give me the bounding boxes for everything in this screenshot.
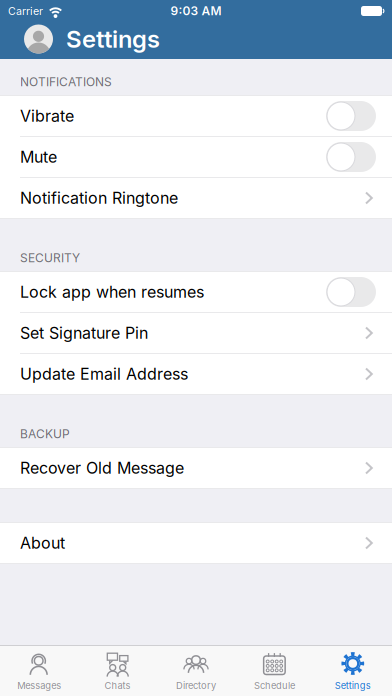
staticText: Vibrate bbox=[20, 107, 74, 125]
button[interactable]: Directory bbox=[157, 652, 235, 691]
button[interactable]: Update Email Address bbox=[0, 354, 392, 394]
staticText: BACKUP bbox=[20, 427, 70, 441]
button[interactable]: Schedule bbox=[235, 652, 314, 691]
button[interactable]: Mute bbox=[326, 142, 376, 172]
staticText: Chats bbox=[105, 680, 131, 691]
button[interactable]: Lock app when resumes bbox=[326, 277, 376, 307]
staticText: SECURITY bbox=[20, 251, 80, 265]
staticText: About bbox=[20, 534, 65, 552]
button[interactable]: Profile bbox=[24, 24, 53, 53]
button[interactable]: Messages bbox=[0, 652, 78, 691]
staticText: Carrier bbox=[8, 5, 43, 17]
staticText: 9:03 AM bbox=[170, 4, 221, 18]
staticText: Recover Old Message bbox=[20, 459, 184, 477]
button[interactable]: About bbox=[0, 523, 392, 563]
button[interactable]: Recover Old Message bbox=[0, 448, 392, 488]
button[interactable]: Vibrate bbox=[326, 101, 376, 131]
button[interactable]: Settings bbox=[314, 652, 392, 691]
button[interactable]: Notification Ringtone bbox=[0, 178, 392, 218]
button[interactable]: Set Signature Pin bbox=[0, 313, 392, 353]
staticText: Mute bbox=[20, 148, 57, 166]
staticText: Update Email Address bbox=[20, 365, 188, 383]
button[interactable]: Chats bbox=[78, 652, 157, 691]
staticText: Settings bbox=[335, 680, 371, 691]
staticText: Settings bbox=[66, 25, 160, 53]
staticText: Notification Ringtone bbox=[20, 189, 178, 207]
staticText: Set Signature Pin bbox=[20, 324, 148, 342]
staticText: Directory bbox=[176, 680, 216, 691]
staticText: Schedule bbox=[254, 680, 295, 691]
staticText: Lock app when resumes bbox=[20, 283, 204, 301]
staticText: NOTIFICATIONS bbox=[20, 75, 112, 89]
staticText: Messages bbox=[17, 680, 61, 691]
